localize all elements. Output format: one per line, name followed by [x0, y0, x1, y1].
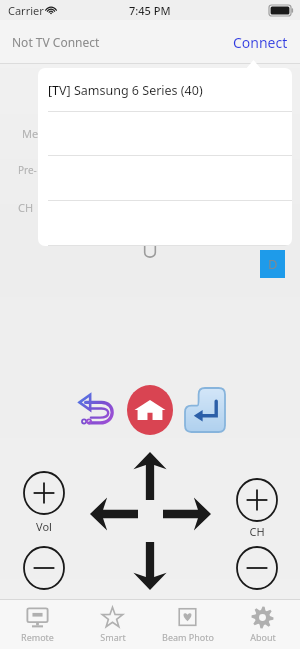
staticText: Beam Photo: [162, 631, 214, 643]
staticText: Remote: [21, 631, 54, 643]
button[interactable]: Not TV Connect: [10, 28, 102, 56]
button[interactable]: [TV] Samsung 6 Series (40): [38, 68, 292, 112]
button[interactable]: Remote: [0, 600, 75, 649]
button[interactable]: Left: [90, 496, 138, 532]
button[interactable]: Enter: [183, 386, 227, 434]
staticText: [TV] Samsung 6 Series (40): [48, 82, 203, 99]
button[interactable]: Volume up: [22, 470, 66, 516]
button[interactable]: [38, 201, 292, 246]
button[interactable]: Volume down: [22, 545, 66, 591]
button[interactable]: Return: [74, 387, 120, 433]
staticText: About: [250, 631, 276, 643]
staticText: Vol: [22, 519, 66, 534]
staticText: CH: [18, 200, 34, 215]
button[interactable]: About: [225, 600, 300, 649]
staticText: 7:45 PM: [129, 3, 171, 18]
button[interactable]: [38, 112, 292, 156]
staticText: D: [268, 255, 278, 273]
button[interactable]: Down: [132, 542, 168, 590]
button[interactable]: Channel down: [235, 545, 279, 591]
button[interactable]: Connect: [231, 27, 290, 58]
staticText: Connect: [233, 33, 288, 52]
staticText: Smart: [100, 631, 126, 643]
button[interactable]: D: [260, 250, 285, 278]
button[interactable]: Home: [127, 385, 173, 435]
button[interactable]: Channel up: [235, 477, 279, 523]
button[interactable]: Beam Photo: [150, 600, 225, 649]
staticText: CH: [235, 524, 279, 539]
staticText: Me: [22, 126, 39, 141]
staticText: Not TV Connect: [12, 34, 100, 50]
staticText: Pre-: [18, 163, 37, 177]
button[interactable]: [38, 156, 292, 201]
staticText: Carrier: [8, 3, 44, 18]
button[interactable]: Smart: [75, 600, 150, 649]
button[interactable]: Right: [163, 496, 211, 532]
button[interactable]: Up: [132, 452, 168, 500]
